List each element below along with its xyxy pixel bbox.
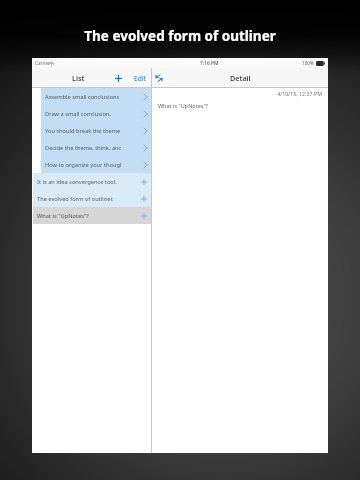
button[interactable]: It is an idea convergence tool.	[33, 173, 151, 190]
button[interactable]: Assemble small conclusions	[41, 88, 151, 105]
button[interactable]: Add child item	[139, 211, 149, 221]
button[interactable]: Edit	[134, 74, 146, 83]
button[interactable]: Decide the theme, think, anc	[41, 139, 151, 156]
staticText: 4/10/15, 12:37 PM	[152, 90, 322, 97]
button[interactable]: The evolved form of outliner.	[33, 190, 151, 207]
staticText: Assemble small conclusions	[45, 93, 120, 101]
button[interactable]: Draw a small conclusion.	[41, 105, 151, 122]
button[interactable]: You should break the theme	[41, 122, 151, 139]
staticText: What is "UpNotes"?	[158, 102, 209, 109]
staticText: It is an idea convergence tool.	[37, 178, 117, 186]
button[interactable]: What is "UpNotes"?	[33, 207, 151, 224]
staticText: Carrier	[35, 60, 50, 66]
staticText: 100%	[302, 60, 314, 66]
staticText: The evolved form of outliner	[0, 27, 360, 45]
staticText: How to organize your thougl	[45, 161, 122, 169]
staticText: The evolved form of outliner.	[37, 195, 114, 203]
button[interactable]: Add child item	[139, 177, 149, 187]
staticText: Decide the theme, think, anc	[45, 144, 122, 152]
staticText: 7:16 PM	[200, 60, 219, 67]
staticText: Detail	[230, 73, 251, 83]
staticText: What is "UpNotes"?	[37, 212, 89, 220]
staticText: Draw a small conclusion.	[45, 110, 111, 118]
button[interactable]: Add	[112, 72, 125, 85]
button[interactable]: Add child item	[139, 194, 149, 204]
button[interactable]: How to organize your thougl	[41, 156, 151, 173]
button[interactable]: Expand detail	[153, 72, 165, 84]
staticText: List	[72, 73, 85, 83]
staticText: Edit	[134, 74, 146, 83]
staticText: You should break the theme	[45, 127, 121, 135]
